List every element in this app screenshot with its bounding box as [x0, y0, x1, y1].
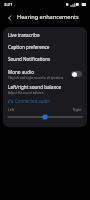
staticText: Sound Notifications	[8, 56, 51, 62]
button[interactable]: Caption preference	[3, 41, 87, 53]
staticText: Caption preference	[8, 44, 50, 50]
staticText: Hearing enhancements	[17, 13, 79, 21]
staticText: Live transcribe	[8, 32, 40, 38]
button[interactable]: Sound Notifications	[3, 53, 87, 65]
button[interactable]: Mono audio toggle	[71, 71, 82, 77]
button[interactable]: Back	[3, 11, 16, 24]
button[interactable]: Live transcribe	[3, 29, 87, 41]
staticText: Left	[8, 107, 15, 112]
staticText: Left/right sound balance	[8, 84, 62, 90]
staticText: Connected audio	[15, 98, 51, 104]
staticText: 3:21	[4, 2, 13, 8]
staticText: Play left and right sound in all speaker…	[8, 76, 64, 80]
button[interactable]: Connected audio	[3, 95, 87, 107]
staticText: Right	[73, 107, 82, 112]
button[interactable]: Mono audio	[3, 67, 87, 81]
staticText: Mono audio	[8, 69, 34, 75]
button[interactable]: Left right sound balance slider	[8, 113, 82, 121]
staticText: Adjust the sound balance	[8, 91, 44, 95]
